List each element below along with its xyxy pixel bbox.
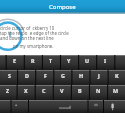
staticText: U <box>85 57 90 64</box>
staticText: R <box>31 57 35 64</box>
button[interactable]: Emoji <box>11 100 29 113</box>
staticText: Z <box>6 87 10 94</box>
staticText: Y <box>67 57 71 64</box>
button[interactable]: H <box>72 70 90 85</box>
staticText: and down on the next line <box>0 35 54 41</box>
staticText: B <box>78 87 82 94</box>
staticText: E <box>13 57 17 64</box>
button[interactable]: I <box>96 55 114 70</box>
button[interactable]: R <box>24 55 42 70</box>
staticText: M <box>113 87 119 94</box>
button[interactable]: Quote <box>88 100 104 113</box>
button[interactable]: S <box>0 70 18 85</box>
button[interactable]: N <box>89 85 107 100</box>
staticText: G <box>61 72 65 79</box>
button[interactable]: U <box>78 55 96 70</box>
button[interactable]: Z <box>0 85 17 100</box>
button[interactable]: M <box>107 85 124 100</box>
staticText: V <box>60 87 64 94</box>
staticText: F <box>44 72 47 79</box>
staticText: S <box>8 72 11 79</box>
staticText: N <box>96 87 101 94</box>
button[interactable]: Y <box>60 55 78 70</box>
button[interactable]: G <box>54 70 72 85</box>
staticText: K <box>115 72 119 79</box>
button[interactable]: K <box>108 70 125 85</box>
staticText: T <box>49 57 53 64</box>
button[interactable]: Space <box>29 100 88 113</box>
button[interactable]: F <box>36 70 54 85</box>
staticText: C <box>42 87 46 94</box>
button[interactable]: X <box>17 85 35 100</box>
staticText: circle cursor of ckberry 10 <box>0 25 55 31</box>
button[interactable]: Symbols <box>0 100 11 113</box>
button[interactable]: J <box>90 70 108 85</box>
staticText: D <box>25 72 29 79</box>
staticText: H <box>79 72 84 79</box>
button[interactable]: B <box>71 85 89 100</box>
staticText: I <box>104 57 107 64</box>
button[interactable]: D <box>18 70 36 85</box>
button[interactable]: V <box>53 85 71 100</box>
button[interactable]: C <box>35 85 53 100</box>
button[interactable]: E <box>6 55 24 70</box>
staticText: tap the respo e edge of the circle <box>0 30 69 36</box>
button[interactable]: T <box>42 55 60 70</box>
staticText: X <box>24 87 28 94</box>
button[interactable]: Microphone <box>104 100 125 113</box>
staticText: Compose <box>49 3 76 11</box>
staticText: J <box>98 72 100 79</box>
button[interactable]: Compose <box>0 0 125 13</box>
staticText: on my smartphone. <box>13 43 54 49</box>
